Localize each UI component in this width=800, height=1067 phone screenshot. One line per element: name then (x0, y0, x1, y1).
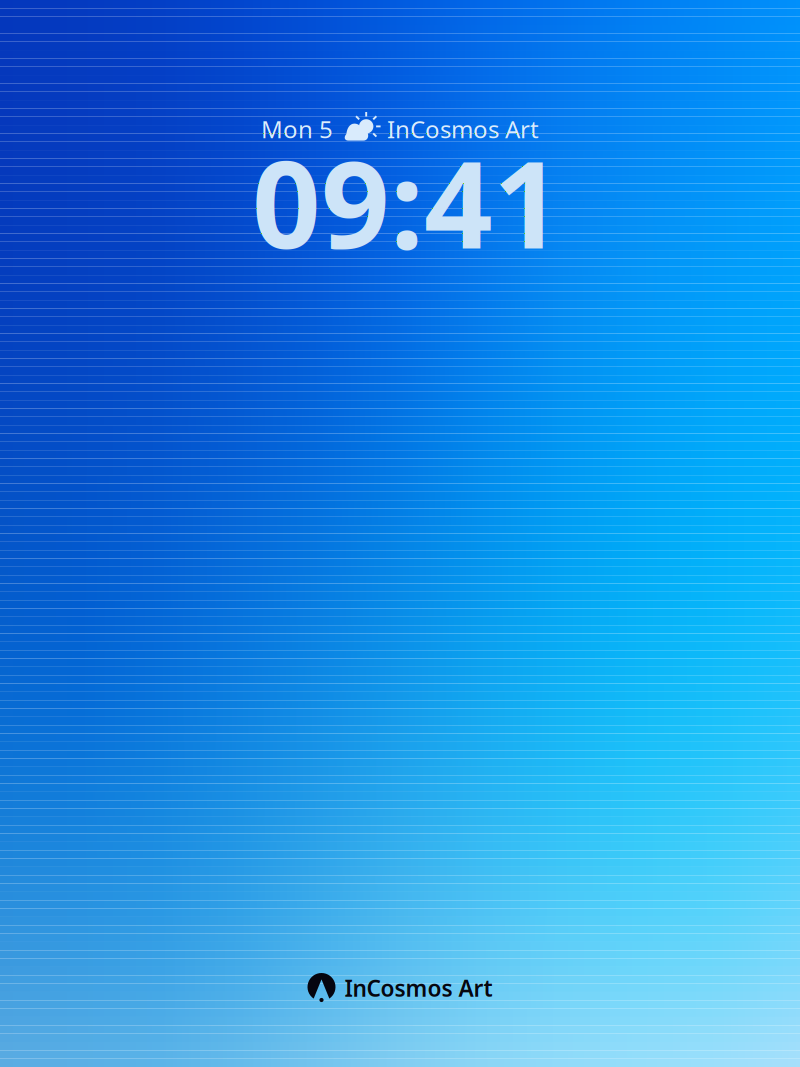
button[interactable]: Mon 5 (0, 114, 800, 144)
staticText: Mon 5 (261, 113, 333, 145)
staticText: InCosmos Art (344, 973, 492, 1003)
button[interactable]: InCosmos Art (0, 973, 800, 1003)
staticText: 09:41 (252, 122, 562, 282)
staticText: InCosmos Art (387, 113, 539, 145)
